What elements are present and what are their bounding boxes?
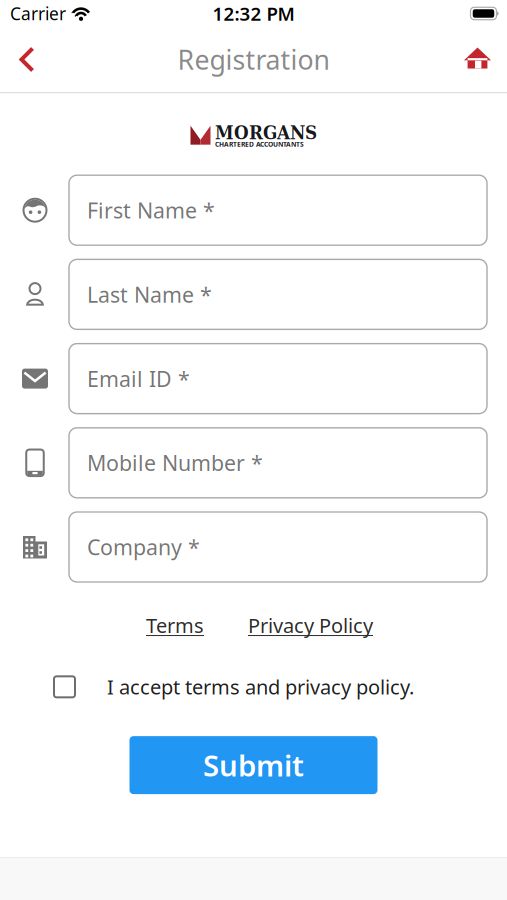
button[interactable]: Submit	[129, 736, 377, 794]
button[interactable]: First Name *	[69, 175, 487, 245]
button[interactable]: Last Name *	[69, 259, 487, 329]
staticText: Email ID *	[87, 364, 190, 393]
staticText: Privacy Policy	[248, 612, 373, 639]
button[interactable]: I accept terms and privacy policy	[54, 676, 75, 697]
button[interactable]: Terms	[146, 612, 204, 639]
staticText: MORGANS	[215, 122, 317, 144]
staticText: Last Name *	[87, 280, 212, 308]
staticText: 12:32 PM	[212, 1, 294, 26]
staticText: Registration	[177, 42, 329, 77]
button[interactable]: Email ID *	[69, 344, 487, 414]
button[interactable]: Privacy Policy	[248, 612, 373, 639]
button[interactable]: Company *	[69, 512, 487, 582]
staticText: Terms	[146, 612, 204, 639]
button[interactable]: Back	[0, 32, 35, 87]
staticText: Submit	[203, 746, 304, 785]
staticText: First Name *	[87, 196, 215, 224]
staticText: Carrier	[10, 2, 66, 25]
staticText: I accept terms and privacy policy.	[107, 674, 414, 700]
staticText: Company *	[87, 533, 200, 561]
staticText: CHARTERED ACCOUNTANTS	[215, 140, 304, 149]
button[interactable]: Mobile Number *	[69, 428, 487, 498]
button[interactable]: Home	[464, 31, 507, 87]
staticText: Mobile Number *	[87, 449, 263, 477]
